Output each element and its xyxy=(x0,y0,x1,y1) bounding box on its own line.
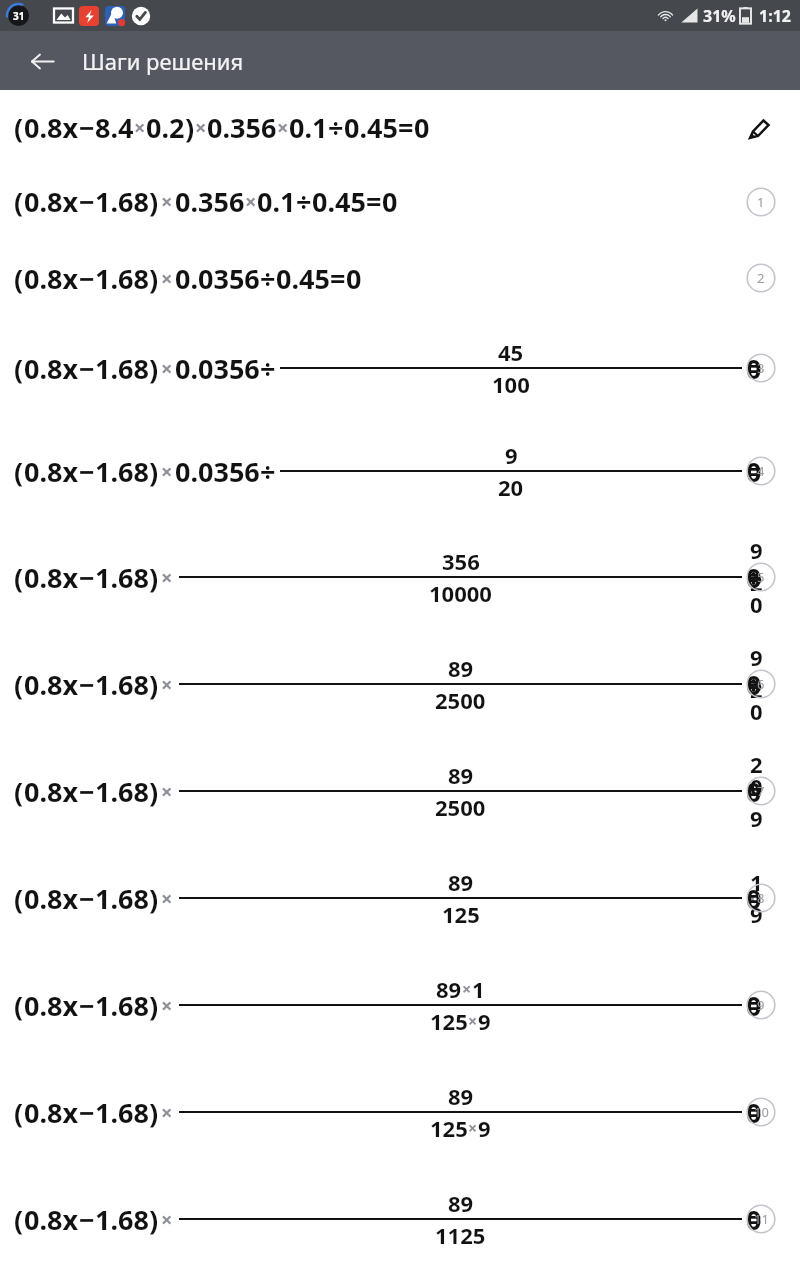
staticText: − xyxy=(79,109,95,146)
staticText: 0 xyxy=(414,109,430,146)
staticText: × xyxy=(161,885,173,912)
staticText: ( xyxy=(14,880,24,917)
staticText: 356 xyxy=(442,546,480,576)
staticText: 45 xyxy=(498,337,524,367)
staticText: × xyxy=(277,114,289,141)
staticText: − xyxy=(79,453,95,490)
staticText: 0.2 xyxy=(146,109,185,146)
staticText: ( xyxy=(14,183,24,220)
staticText: ( xyxy=(14,987,24,1024)
staticText: 0.8x xyxy=(24,666,79,703)
staticText: 0.8x xyxy=(24,1201,79,1238)
staticText: 89 xyxy=(448,653,474,683)
button[interactable]: 1 xyxy=(746,187,776,217)
staticText: 100 xyxy=(492,369,530,399)
staticText: = xyxy=(366,183,382,220)
staticText: 2500 xyxy=(435,685,486,715)
staticText: 1:12 xyxy=(759,5,791,27)
staticText: 125 xyxy=(430,1006,468,1036)
staticText: ( xyxy=(14,559,24,596)
button[interactable]: 7 xyxy=(746,776,776,806)
button[interactable]: ( xyxy=(0,630,800,737)
staticText: × xyxy=(161,564,173,591)
staticText: 0.356 xyxy=(175,183,245,220)
staticText: 89 xyxy=(436,974,462,1004)
staticText: 0.8x xyxy=(24,559,79,596)
button[interactable]: ( xyxy=(0,524,800,630)
button[interactable]: ( xyxy=(0,844,800,951)
staticText: × xyxy=(161,1099,173,1126)
button[interactable]: 11 xyxy=(746,1204,776,1234)
staticText: − xyxy=(79,880,95,917)
staticText: = xyxy=(398,109,414,146)
staticText: 0 xyxy=(382,183,398,220)
staticText: 0.0356 xyxy=(175,350,260,387)
button[interactable]: 9 xyxy=(746,990,776,1020)
button[interactable]: ( xyxy=(0,165,800,238)
staticText: 1 xyxy=(757,193,765,211)
staticText: ) xyxy=(149,260,159,297)
staticText: − xyxy=(79,987,95,1024)
button[interactable]: ( xyxy=(0,1058,800,1165)
staticText: 89 xyxy=(448,1081,474,1111)
button[interactable]: Back xyxy=(20,39,64,83)
staticText: × xyxy=(161,355,173,382)
button[interactable]: 3 xyxy=(746,353,776,383)
staticText: 31% xyxy=(703,5,736,27)
staticText: 5 xyxy=(757,568,765,586)
button[interactable]: ( xyxy=(0,418,800,524)
staticText: 4 xyxy=(757,462,765,480)
staticText: ) xyxy=(149,1094,159,1131)
staticText: ) xyxy=(149,350,159,387)
staticText: ( xyxy=(14,773,24,810)
staticText: 1.68 xyxy=(95,183,149,220)
button[interactable]: 6 xyxy=(746,669,776,699)
staticText: ) xyxy=(149,453,159,490)
staticText: 0.356 xyxy=(207,109,277,146)
staticText: 1 xyxy=(472,974,485,1004)
staticText: 2 xyxy=(757,269,765,287)
staticText: × xyxy=(195,114,207,141)
button[interactable]: Edit xyxy=(742,111,776,145)
button[interactable]: ( xyxy=(0,737,800,844)
staticText: − xyxy=(79,1201,95,1238)
staticText: × xyxy=(134,114,146,141)
staticText: ) xyxy=(149,183,159,220)
staticText: ( xyxy=(14,109,24,146)
staticText: × xyxy=(161,1206,173,1233)
button[interactable]: ( xyxy=(0,951,800,1058)
button[interactable]: 8 xyxy=(746,883,776,913)
staticText: 9 xyxy=(478,1006,491,1036)
staticText: − xyxy=(79,183,95,220)
staticText: ( xyxy=(14,1201,24,1238)
staticText: × xyxy=(468,1117,478,1139)
button[interactable]: ( xyxy=(0,238,800,318)
staticText: 9 xyxy=(757,996,765,1014)
button[interactable]: 10 xyxy=(746,1097,776,1127)
staticText: 10000 xyxy=(429,578,492,608)
button[interactable]: ( xyxy=(0,318,800,418)
staticText: 8 xyxy=(757,889,765,907)
staticText: ÷ xyxy=(260,260,276,297)
staticText: × xyxy=(161,458,173,485)
staticText: 6 xyxy=(757,675,765,693)
staticText: ( xyxy=(14,1094,24,1131)
button[interactable]: 2 xyxy=(746,263,776,293)
staticText: 20 xyxy=(498,472,524,502)
staticText: ) xyxy=(185,109,195,146)
button[interactable]: ( xyxy=(0,1165,800,1272)
staticText: 2500 xyxy=(435,792,486,822)
staticText: 1.68 xyxy=(95,453,149,490)
staticText: × xyxy=(468,1010,478,1032)
button[interactable]: 5 xyxy=(746,562,776,592)
staticText: Шаги решения xyxy=(82,46,244,76)
staticText: × xyxy=(161,671,173,698)
button[interactable]: 4 xyxy=(746,456,776,486)
staticText: 31 xyxy=(13,9,25,23)
staticText: 0.8x xyxy=(24,453,79,490)
staticText: 0.8x xyxy=(24,773,79,810)
button[interactable]: ( xyxy=(0,90,800,165)
staticText: 89 xyxy=(448,1188,474,1218)
staticText: 1.68 xyxy=(95,1201,149,1238)
staticText: ÷ xyxy=(260,453,276,490)
